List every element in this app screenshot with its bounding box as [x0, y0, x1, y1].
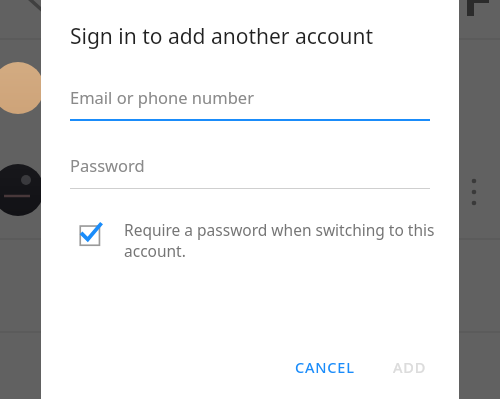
staticText: Sign in to add another account [70, 22, 419, 51]
button[interactable]: More options [462, 170, 492, 214]
button[interactable]: Email or phone number [70, 83, 430, 121]
staticText: Require a password when switching to thi… [124, 219, 435, 262]
staticText: CANCEL [295, 357, 355, 377]
button[interactable]: Password [70, 151, 430, 189]
staticText: ADD [393, 357, 427, 377]
staticText: Password [70, 154, 145, 176]
button[interactable]: Require a password when switching to thi… [75, 219, 435, 262]
button[interactable]: CANCEL [285, 347, 365, 387]
staticText: Email or phone number [70, 86, 254, 108]
button[interactable]: ADD [383, 347, 437, 387]
